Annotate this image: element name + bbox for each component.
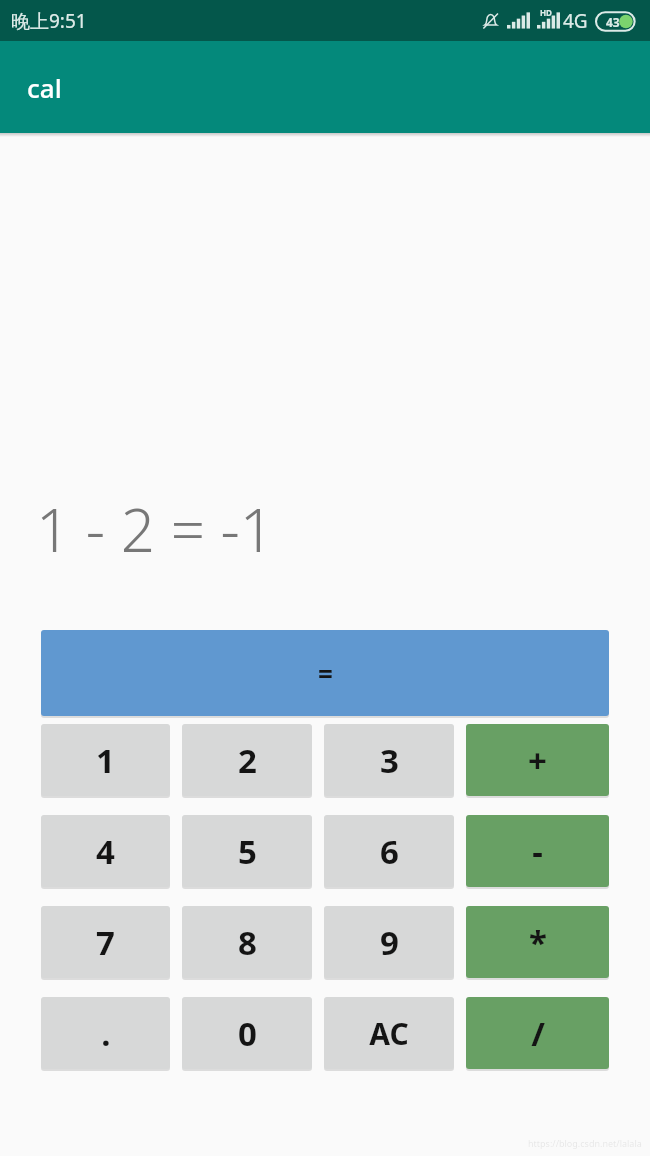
button[interactable]: 7 bbox=[41, 906, 170, 978]
staticText: . bbox=[101, 1011, 111, 1056]
staticText: 4G bbox=[563, 8, 588, 34]
other: Silent bbox=[482, 12, 499, 30]
staticText: 43 bbox=[606, 14, 620, 30]
staticText: 1 - 2 = -1 bbox=[36, 488, 650, 570]
staticText: = bbox=[318, 656, 333, 691]
staticText: https://blog.csdn.net/lalala bbox=[528, 1137, 642, 1149]
button[interactable]: . bbox=[41, 997, 170, 1069]
button[interactable]: 0 bbox=[182, 997, 312, 1069]
button[interactable]: = bbox=[41, 630, 609, 716]
staticText: / bbox=[531, 1011, 545, 1056]
button[interactable]: 1 bbox=[41, 724, 170, 796]
button[interactable]: + bbox=[466, 724, 609, 796]
button[interactable]: - bbox=[466, 815, 609, 887]
staticText: 8 bbox=[238, 920, 257, 965]
button[interactable]: 4 bbox=[41, 815, 170, 887]
button[interactable]: 5 bbox=[182, 815, 312, 887]
staticText: AC bbox=[369, 1013, 409, 1054]
staticText: * bbox=[529, 920, 547, 965]
staticText: 3 bbox=[380, 738, 399, 783]
button[interactable]: 6 bbox=[324, 815, 454, 887]
staticText: 晚上9:51 bbox=[11, 8, 87, 34]
staticText: 0 bbox=[238, 1011, 257, 1056]
button[interactable]: 8 bbox=[182, 906, 312, 978]
button[interactable]: 2 bbox=[182, 724, 312, 796]
staticText: HD bbox=[540, 7, 552, 18]
staticText: 9 bbox=[380, 920, 399, 965]
button[interactable]: AC bbox=[324, 997, 454, 1069]
staticText: cal bbox=[27, 70, 62, 105]
staticText: 5 bbox=[238, 829, 257, 874]
button[interactable]: 3 bbox=[324, 724, 454, 796]
staticText: 2 bbox=[238, 738, 257, 783]
staticText: 4 bbox=[96, 829, 115, 874]
staticText: 7 bbox=[96, 920, 115, 965]
staticText: - bbox=[532, 829, 543, 874]
button[interactable]: * bbox=[466, 906, 609, 978]
staticText: 6 bbox=[380, 829, 399, 874]
staticText: 1 bbox=[96, 738, 115, 783]
button[interactable]: 9 bbox=[324, 906, 454, 978]
staticText: + bbox=[528, 738, 547, 783]
button[interactable]: / bbox=[466, 997, 609, 1069]
